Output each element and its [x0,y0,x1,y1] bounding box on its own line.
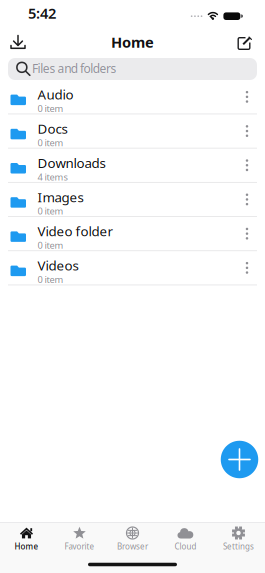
button[interactable]: Settings [212,526,265,552]
staticText: Audio [37,85,73,103]
staticText: 0 item [37,273,63,286]
staticText: Home [14,541,38,552]
button[interactable]: New folder [237,35,265,49]
button[interactable]: Downloads [0,34,26,49]
staticText: 5:42 [28,3,56,23]
button[interactable]: More options for Video folder [237,224,257,244]
staticText: Cloud [174,541,196,552]
button[interactable]: Audio [0,80,265,114]
staticText: Images [37,188,83,206]
button[interactable]: More options for Images [237,189,257,209]
button[interactable]: Video folder [0,217,265,250]
staticText: Downloads [37,154,105,172]
staticText: Settings [223,541,254,552]
button[interactable]: Add [221,441,258,478]
button[interactable]: More options for Videos [237,258,257,278]
staticText: 0 item [37,239,63,251]
staticText: 0 item [37,102,63,115]
button[interactable]: Cloud [159,526,212,552]
staticText: 0 item [37,205,63,217]
staticText: Docs [37,120,67,137]
staticText: Video folder [37,222,113,240]
button[interactable]: More options for Docs [237,121,257,141]
staticText: Videos [37,256,78,274]
button[interactable]: More options for Audio [237,87,257,107]
button[interactable]: Browser [106,526,159,552]
staticText: Favorite [64,541,94,552]
button[interactable]: Images [0,183,265,216]
staticText: Files and folders [32,60,117,76]
button[interactable]: Favorite [53,526,106,552]
button[interactable]: Docs [0,114,265,148]
staticText: 0 item [37,136,63,149]
button[interactable]: Videos [0,251,265,285]
staticText: Browser [117,541,148,552]
button[interactable]: Downloads [0,148,265,182]
button[interactable]: More options for Downloads [237,155,257,175]
staticText: 4 items [37,171,67,183]
button[interactable]: Home [0,526,53,552]
button[interactable]: Search files and folders [0,58,265,80]
staticText: Home [111,32,154,52]
